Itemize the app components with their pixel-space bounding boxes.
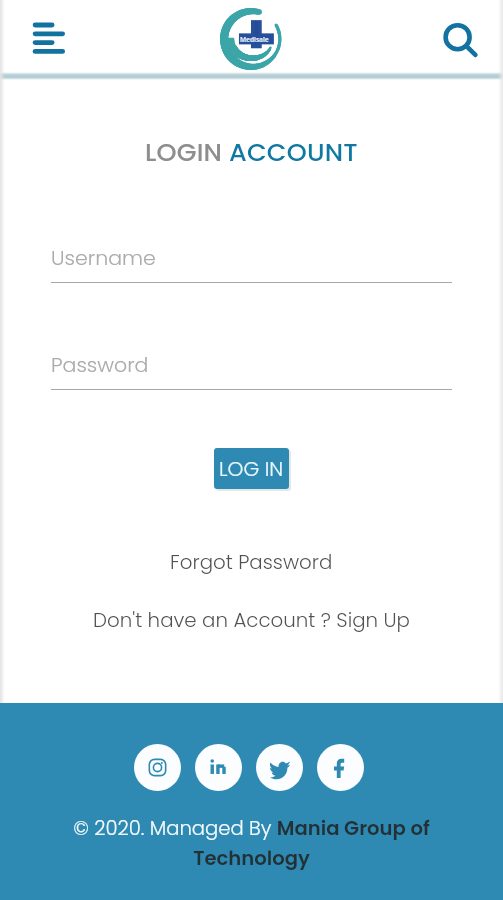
button[interactable]: LOG IN	[214, 448, 289, 489]
staticText: Don't have an Account ? Sign Up	[93, 606, 410, 634]
staticText: Username	[51, 243, 156, 272]
staticText: Forgot Password	[170, 548, 333, 576]
button[interactable]: Twitter	[256, 744, 303, 791]
staticText: Password	[51, 350, 149, 379]
staticText: Medisale	[240, 35, 269, 44]
button[interactable]: Don't have an Account ? Sign Up	[79, 601, 424, 639]
button[interactable]: Facebook	[317, 744, 364, 791]
button[interactable]: LinkedIn	[195, 744, 242, 791]
button[interactable]: Instagram	[134, 744, 181, 791]
staticText: LOGIN ACCOUNT	[145, 134, 358, 170]
button[interactable]: Forgot Password	[156, 543, 347, 581]
button[interactable]: Menu	[22, 14, 70, 62]
staticText: LOG IN	[219, 455, 284, 483]
button[interactable]: Search	[436, 16, 484, 64]
staticText: © 2020. Managed By Mania Group of Techno…	[64, 814, 439, 872]
